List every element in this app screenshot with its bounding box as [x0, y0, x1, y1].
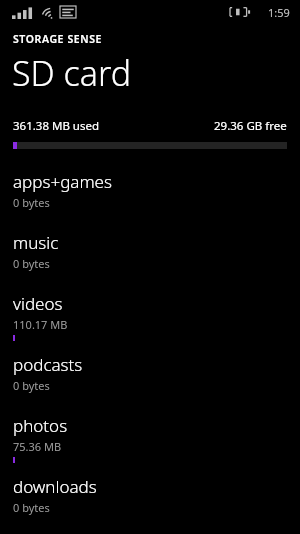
staticText: 0 bytes — [13, 500, 50, 515]
staticText: podcasts — [13, 353, 83, 376]
staticText: 361.38 MB used — [13, 118, 100, 134]
staticText: 1:59 — [268, 5, 290, 20]
staticText: videos — [13, 292, 63, 315]
button[interactable]: music — [0, 222, 300, 283]
staticText: 75.36 MB — [13, 439, 62, 454]
button[interactable]: apps+games — [0, 161, 300, 222]
staticText: 29.36 GB free — [214, 118, 287, 134]
button[interactable]: downloads — [0, 466, 300, 527]
staticText: downloads — [13, 475, 97, 498]
button[interactable]: podcasts — [0, 344, 300, 405]
button[interactable]: photos — [0, 405, 300, 466]
staticText: music — [13, 231, 59, 254]
staticText: SD card — [12, 50, 132, 96]
staticText: 0 bytes — [13, 378, 50, 393]
staticText: STORAGE SENSE — [13, 32, 103, 46]
staticText: 0 bytes — [13, 195, 50, 210]
staticText: photos — [13, 414, 68, 437]
staticText: apps+games — [13, 170, 112, 193]
staticText: 0 bytes — [13, 256, 50, 271]
button[interactable]: videos — [0, 283, 300, 344]
staticText: 110.17 MB — [13, 317, 68, 332]
